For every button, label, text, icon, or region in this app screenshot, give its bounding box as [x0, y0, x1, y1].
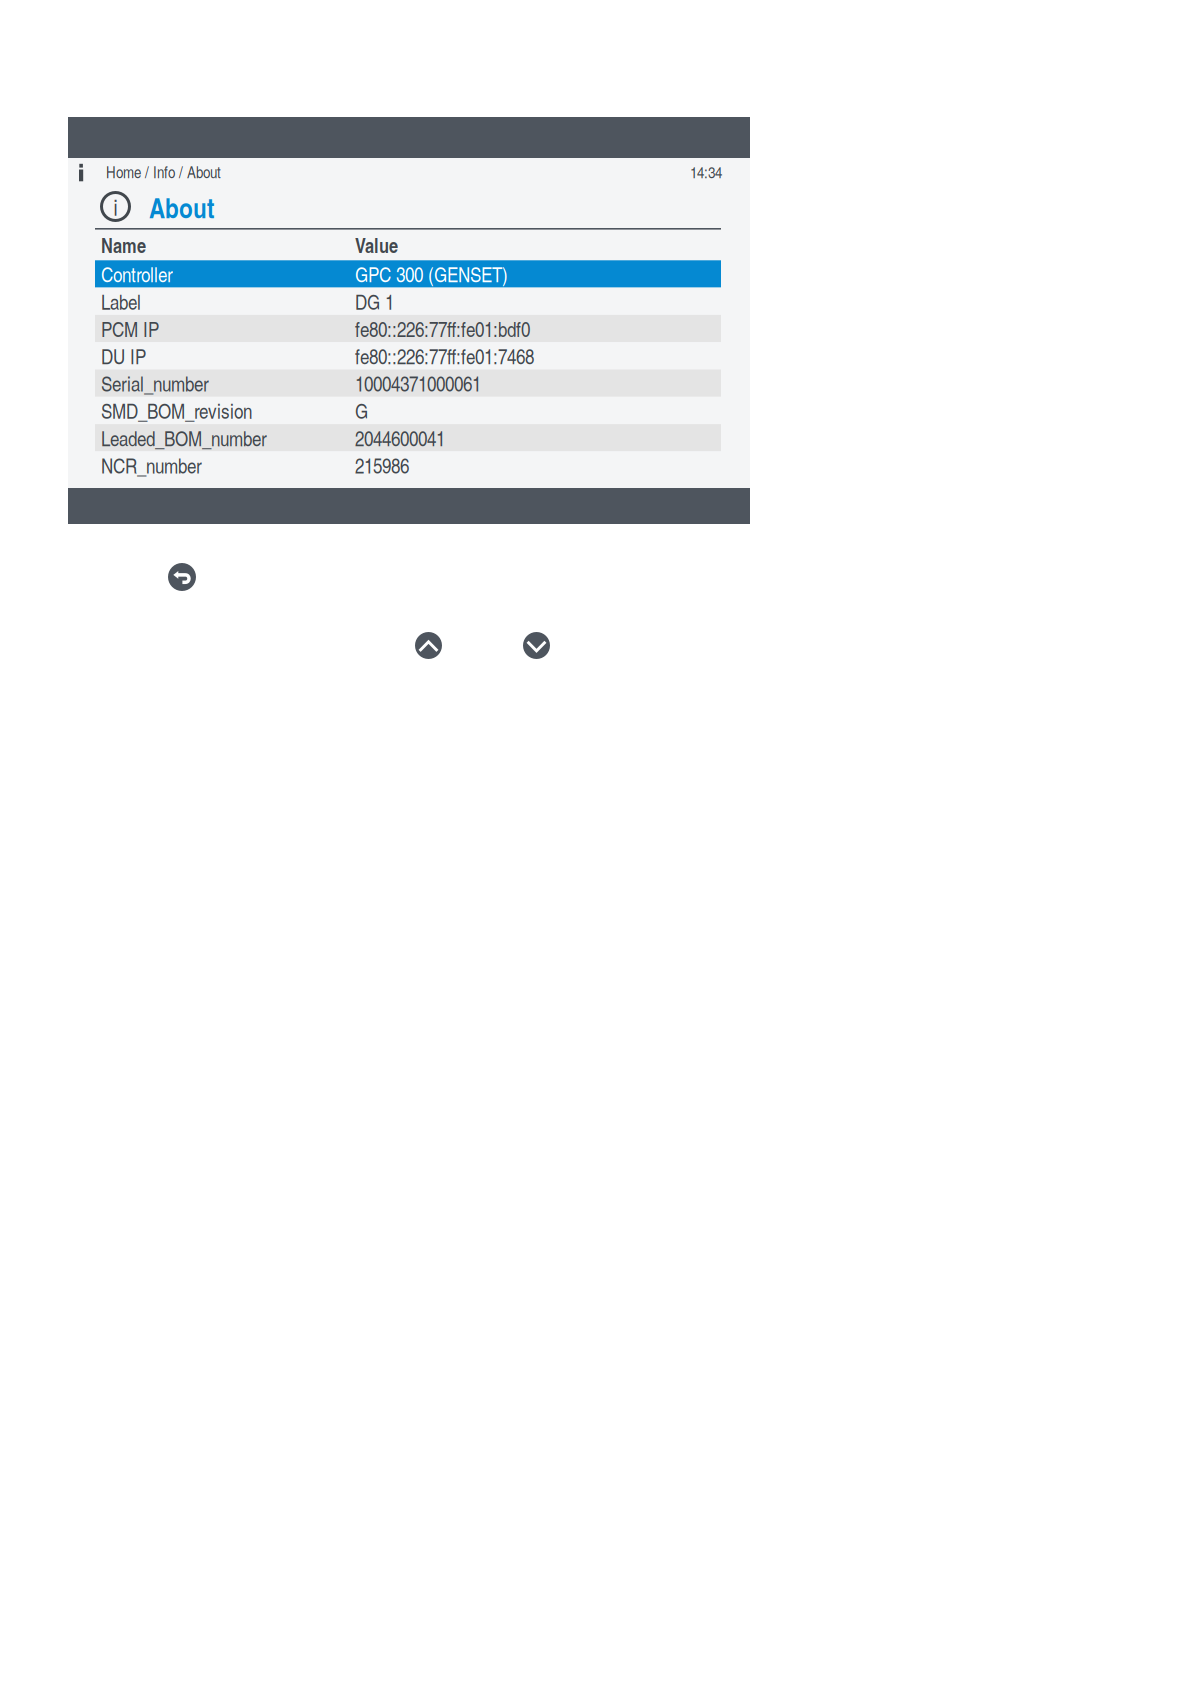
button[interactable]: Serial_number: [95, 369, 721, 397]
staticText: Value: [355, 231, 398, 259]
staticText: GPC 300 (GENSET): [355, 260, 508, 288]
button[interactable]: Label: [95, 288, 721, 315]
button[interactable]: NCR_number: [95, 451, 721, 479]
staticText: 215986: [355, 451, 409, 479]
staticText: fe80::226:77ff:fe01:bdf0: [355, 314, 530, 343]
staticText: Home / Info / About: [106, 160, 221, 183]
staticText: i: [113, 191, 117, 222]
button[interactable]: Leaded_BOM_number: [95, 424, 721, 451]
staticText: 14:34: [690, 160, 722, 183]
staticText: Leaded_BOM_number: [101, 423, 267, 452]
staticText: DG 1: [355, 287, 394, 315]
button[interactable]: SMD_BOM_revision: [95, 397, 721, 424]
staticText: PCM IP: [101, 314, 159, 343]
button[interactable]: Scroll up: [415, 632, 442, 659]
staticText: Controller: [101, 260, 173, 288]
staticText: NCR_number: [101, 451, 202, 479]
button[interactable]: DU IP: [95, 342, 721, 369]
button[interactable]: Scroll down: [523, 632, 550, 659]
button[interactable]: Home / Info / About: [106, 160, 221, 183]
staticText: G: [355, 396, 368, 425]
staticText: DU IP: [101, 342, 146, 370]
staticText: Name: [101, 231, 146, 259]
staticText: SMD_BOM_revision: [101, 396, 252, 425]
staticText: About: [149, 188, 214, 227]
staticText: Serial_number: [101, 369, 209, 397]
staticText: 2044600041: [355, 423, 445, 452]
staticText: Label: [101, 287, 141, 315]
button[interactable]: PCM IP: [95, 315, 721, 342]
button[interactable]: Back: [168, 563, 196, 591]
staticText: fe80::226:77ff:fe01:7468: [355, 342, 534, 370]
button[interactable]: Controller: [95, 260, 721, 288]
staticText: 10004371000061: [355, 369, 481, 397]
